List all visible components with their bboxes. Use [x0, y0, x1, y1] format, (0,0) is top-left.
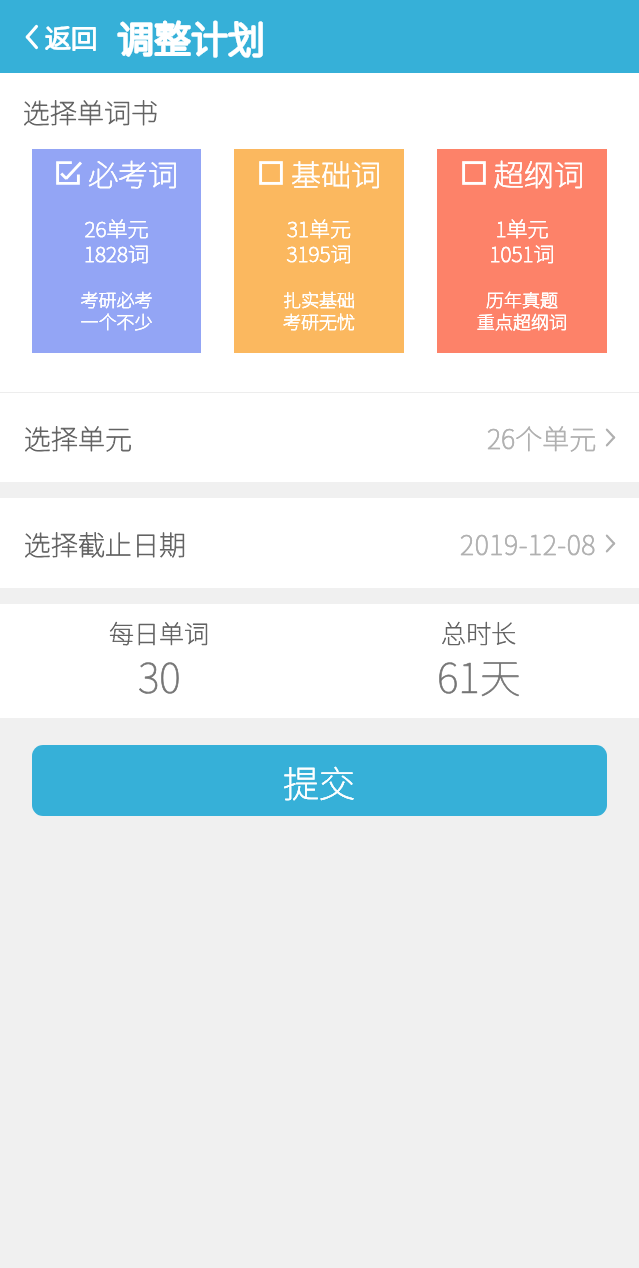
staticText: 选择截止日期: [24, 524, 186, 563]
staticText: 2019-12-08: [460, 524, 597, 563]
staticText: 选择单词书: [23, 92, 158, 131]
button[interactable]: 必考词: [32, 149, 201, 353]
button[interactable]: 选择单元: [0, 393, 639, 482]
staticText: 选择单词书: [23, 92, 158, 131]
staticText: 总时长: [441, 614, 517, 650]
staticText: 61天: [437, 645, 521, 704]
staticText: 总时长: [441, 614, 517, 650]
staticText: 考研必考 一个不少: [32, 286, 201, 334]
button[interactable]: 选择截止日期: [0, 498, 639, 588]
staticText: 30: [138, 645, 181, 704]
staticText: 31单元 3195词: [234, 213, 404, 268]
staticText: 30: [138, 645, 181, 704]
staticText: 超纲词: [494, 151, 584, 194]
staticText: 必考词: [88, 151, 178, 194]
button[interactable]: 基础词: [234, 149, 404, 353]
staticText: 26个单元: [487, 418, 597, 457]
staticText: 扎实基础 考研无忧: [234, 286, 404, 334]
staticText: 历年真题 重点超纲词: [437, 286, 607, 334]
staticText: 调整计划: [117, 10, 265, 64]
staticText: 每日单词: [109, 614, 210, 650]
staticText: 提交: [283, 755, 356, 807]
staticText: 1单元 1051词: [437, 213, 607, 268]
staticText: 调整计划: [117, 10, 265, 64]
staticText: 2019-12-08: [460, 524, 597, 563]
staticText: 1单元 1051词: [437, 213, 607, 268]
staticText: 提交: [283, 755, 356, 807]
staticText: 选择截止日期: [24, 524, 186, 563]
staticText: 历年真题 重点超纲词: [437, 286, 607, 334]
button[interactable]: 提交: [32, 745, 607, 816]
staticText: 基础词: [291, 151, 381, 194]
staticText: 31单元 3195词: [234, 213, 404, 268]
staticText: 必考词: [88, 151, 178, 194]
staticText: 返回: [45, 18, 98, 56]
staticText: 26单元 1828词: [32, 213, 201, 268]
staticText: 选择单元: [24, 418, 132, 457]
staticText: 选择单元: [24, 418, 132, 457]
staticText: 扎实基础 考研无忧: [234, 286, 404, 334]
staticText: 超纲词: [494, 151, 584, 194]
staticText: 返回: [45, 18, 98, 56]
staticText: 61天: [437, 645, 521, 704]
staticText: 基础词: [291, 151, 381, 194]
staticText: 考研必考 一个不少: [32, 286, 201, 334]
button[interactable]: Back: [21, 10, 103, 64]
staticText: 26单元 1828词: [32, 213, 201, 268]
staticText: 每日单词: [109, 614, 210, 650]
staticText: 26个单元: [487, 418, 597, 457]
button[interactable]: 超纲词: [437, 149, 607, 353]
